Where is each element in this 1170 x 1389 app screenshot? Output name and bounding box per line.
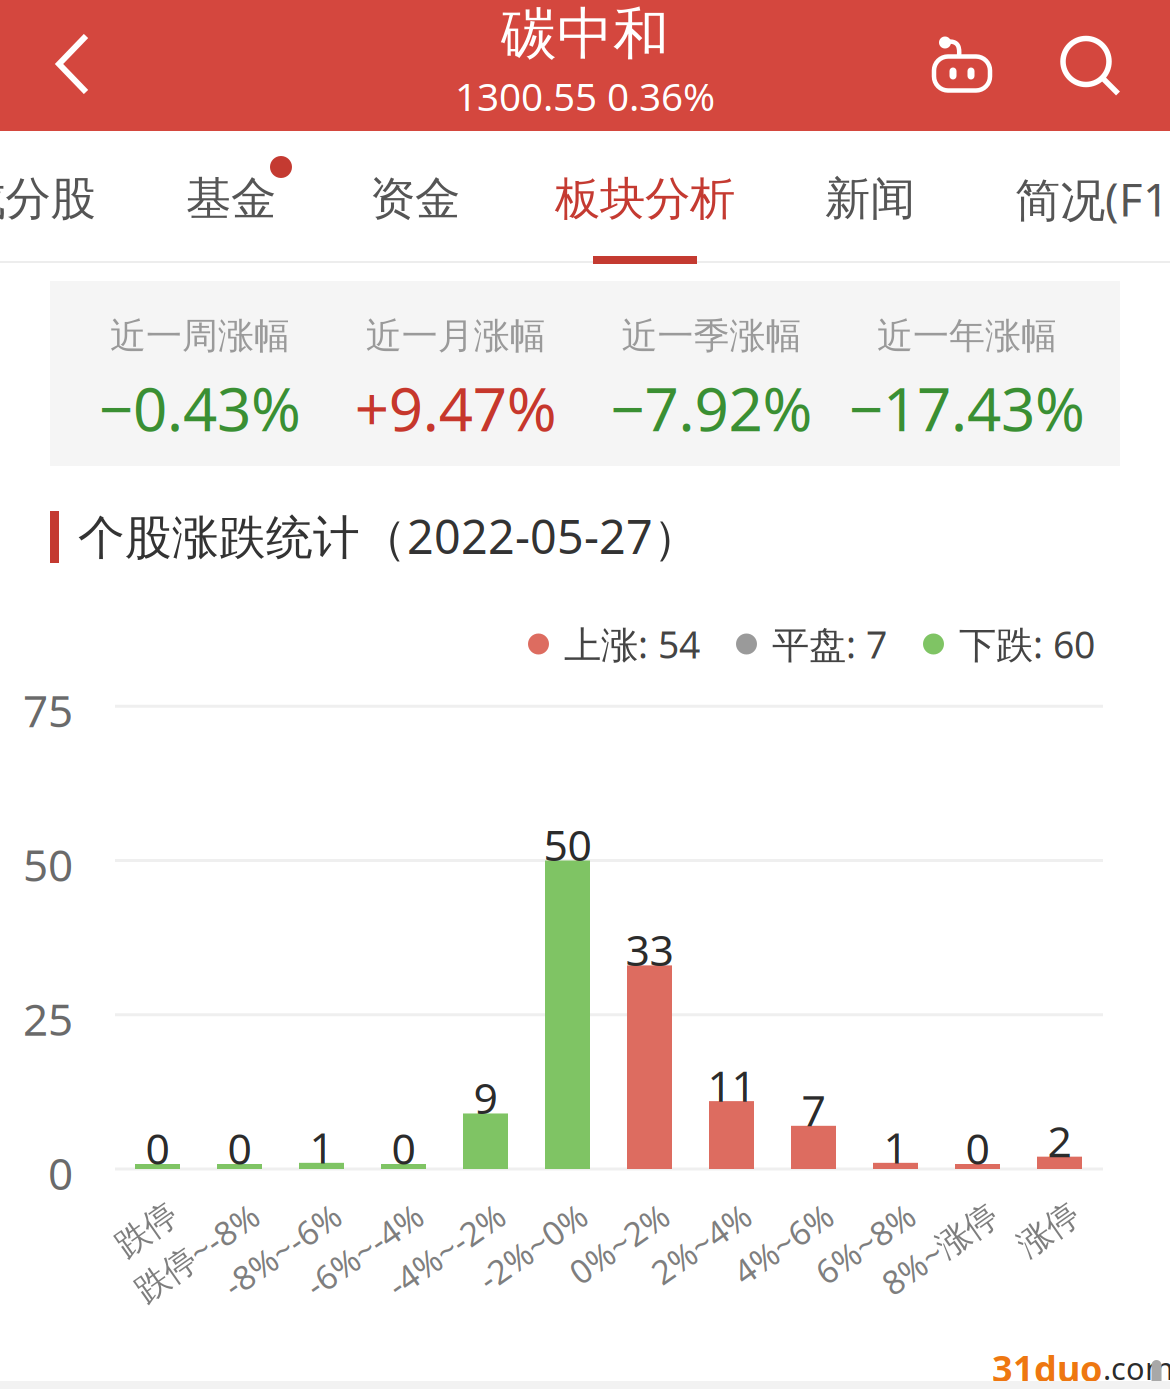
staticText: 新闻 (825, 171, 915, 227)
staticText: -6%~-4% (284, 1189, 419, 1233)
staticText: 7 (801, 1081, 825, 1138)
staticText: -4%~-2% (366, 1189, 501, 1233)
staticText: 1300.55 0.36% (455, 70, 715, 122)
staticText: 板块分析 (555, 171, 735, 227)
staticText: 6%~8% (798, 1189, 911, 1233)
staticText: 50 (23, 835, 73, 894)
staticText: 4%~6% (716, 1189, 829, 1233)
staticText: 成分股 (0, 171, 95, 227)
button[interactable]: Search (1030, 0, 1150, 131)
staticText: 平盘: 7 (772, 619, 887, 669)
staticText: 个股涨跌统计（2022-05-27） (78, 505, 700, 567)
staticText: 75 (23, 681, 73, 739)
button[interactable]: 新闻 (825, 139, 915, 259)
button[interactable]: 简况(F10) (1015, 139, 1170, 259)
staticText: 0 (48, 1144, 73, 1202)
staticText: 0%~2% (552, 1189, 665, 1233)
staticText: 31duo (992, 1344, 1103, 1389)
staticText: 25 (23, 989, 73, 1048)
staticText: 简况(F10) (1015, 169, 1170, 229)
staticText: 近一周涨幅 (110, 314, 290, 358)
button[interactable]: 板块分析 (555, 139, 735, 259)
staticText: -8%~-6% (202, 1189, 337, 1233)
staticText: 基金 (186, 171, 276, 227)
staticText: 2%~4% (634, 1189, 747, 1233)
staticText: −7.92% (610, 368, 812, 448)
button[interactable]: Assistant (903, 0, 1023, 131)
staticText: 近一月涨幅 (366, 314, 546, 358)
staticText: 11 (707, 1057, 755, 1113)
staticText: 9 (473, 1069, 497, 1126)
button[interactable]: Back (12, 0, 132, 129)
staticText: 1 (883, 1118, 907, 1175)
staticText: .com (1103, 1348, 1170, 1388)
staticText: 资金 (370, 171, 460, 227)
staticText: 0 (227, 1120, 251, 1176)
staticText: 涨停 (1009, 1190, 1075, 1231)
staticText: 8%~涨停 (861, 1189, 993, 1233)
staticText: 近一季涨幅 (621, 314, 801, 358)
staticText: 上涨: 54 (564, 619, 700, 669)
button[interactable]: 成分股 (0, 139, 95, 259)
staticText: 1 (309, 1118, 333, 1175)
staticText: 跌停~-8% (112, 1189, 255, 1233)
staticText: 近一年涨幅 (877, 314, 1057, 358)
staticText: -2%~0% (459, 1189, 583, 1233)
staticText: 0 (391, 1120, 415, 1176)
staticText: −0.43% (99, 368, 301, 448)
staticText: −17.43% (849, 368, 1085, 448)
staticText: +9.47% (355, 368, 557, 448)
staticText: 0 (965, 1120, 989, 1176)
staticText: 33 (625, 921, 673, 978)
staticText: 碳中和 (501, 0, 669, 68)
button[interactable]: 资金 (370, 139, 460, 259)
staticText: 0 (145, 1120, 169, 1176)
staticText: 50 (543, 816, 591, 873)
staticText: 下跌: 60 (959, 619, 1095, 669)
staticText: 2 (1047, 1112, 1071, 1169)
button[interactable]: 基金 (186, 139, 276, 259)
staticText: 跌停 (107, 1190, 173, 1231)
